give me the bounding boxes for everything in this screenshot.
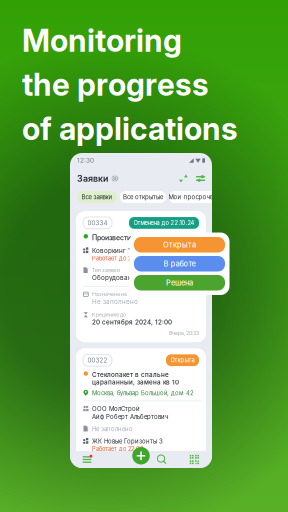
button[interactable]: 00334	[76, 211, 206, 342]
staticText: 30	[112, 175, 118, 182]
button[interactable]: Scan	[190, 455, 199, 464]
staticText: Все заявки	[81, 193, 112, 201]
button[interactable]: В работе	[134, 256, 225, 271]
staticText: Мои просроченные	[168, 193, 227, 201]
staticText: Тип заявки	[92, 267, 120, 273]
staticText: Работает до 22:00	[92, 445, 144, 452]
staticText: Стеклопакет в спальне царапанный, замена…	[92, 371, 179, 386]
button[interactable]: 00322	[76, 348, 206, 464]
button[interactable]: Add	[132, 447, 150, 464]
staticText: the progress	[22, 66, 209, 103]
button[interactable]: Все заявки	[77, 191, 117, 203]
staticText: Не заполнено	[92, 298, 138, 305]
button[interactable]: Решена	[134, 275, 225, 290]
staticText: Оборудование	[92, 274, 140, 281]
staticText: 00334	[87, 219, 107, 227]
staticText: 00322	[87, 356, 107, 364]
button[interactable]: Все открытые	[120, 191, 166, 203]
button[interactable]: Sort	[179, 174, 188, 183]
button[interactable]: Открыта	[134, 237, 225, 252]
staticText: Решена	[166, 278, 193, 287]
button[interactable]: Search	[156, 454, 167, 465]
staticText: Заявки	[77, 173, 108, 184]
staticText: Monitoring	[22, 22, 182, 59]
button[interactable]: Filter	[196, 174, 205, 183]
staticText: Открыта	[170, 357, 194, 364]
staticText: Назначена на	[92, 291, 127, 297]
staticText: В работе	[163, 259, 195, 268]
staticText: Работает до 20:00	[92, 255, 145, 262]
staticText: Произвести ремонт	[92, 234, 157, 242]
staticText: 12:30	[77, 157, 94, 164]
staticText: ЖК Новые Горизонты 3	[92, 438, 163, 445]
staticText: Все открытые	[123, 193, 163, 201]
staticText: of applications	[22, 110, 238, 147]
staticText: К решению до	[92, 311, 126, 318]
staticText: ООО МолСтрой	[92, 405, 140, 413]
staticText: Коворкинг "Лето"	[92, 247, 150, 255]
button[interactable]: Мои просроченные	[169, 191, 227, 203]
staticText: Москва, бульвар Большой, дом 42	[92, 390, 194, 397]
staticText: Не заполнено	[92, 425, 133, 433]
staticText: 20 сентября 2024, 12:00	[92, 318, 172, 326]
button[interactable]: Menu	[81, 453, 93, 465]
staticText: Айф Роберт Альбертович	[92, 413, 168, 420]
staticText: Отменена до 22.10.24	[133, 219, 194, 226]
staticText: Вчера, 20:33	[169, 330, 199, 336]
staticText: Открыта	[163, 240, 196, 249]
